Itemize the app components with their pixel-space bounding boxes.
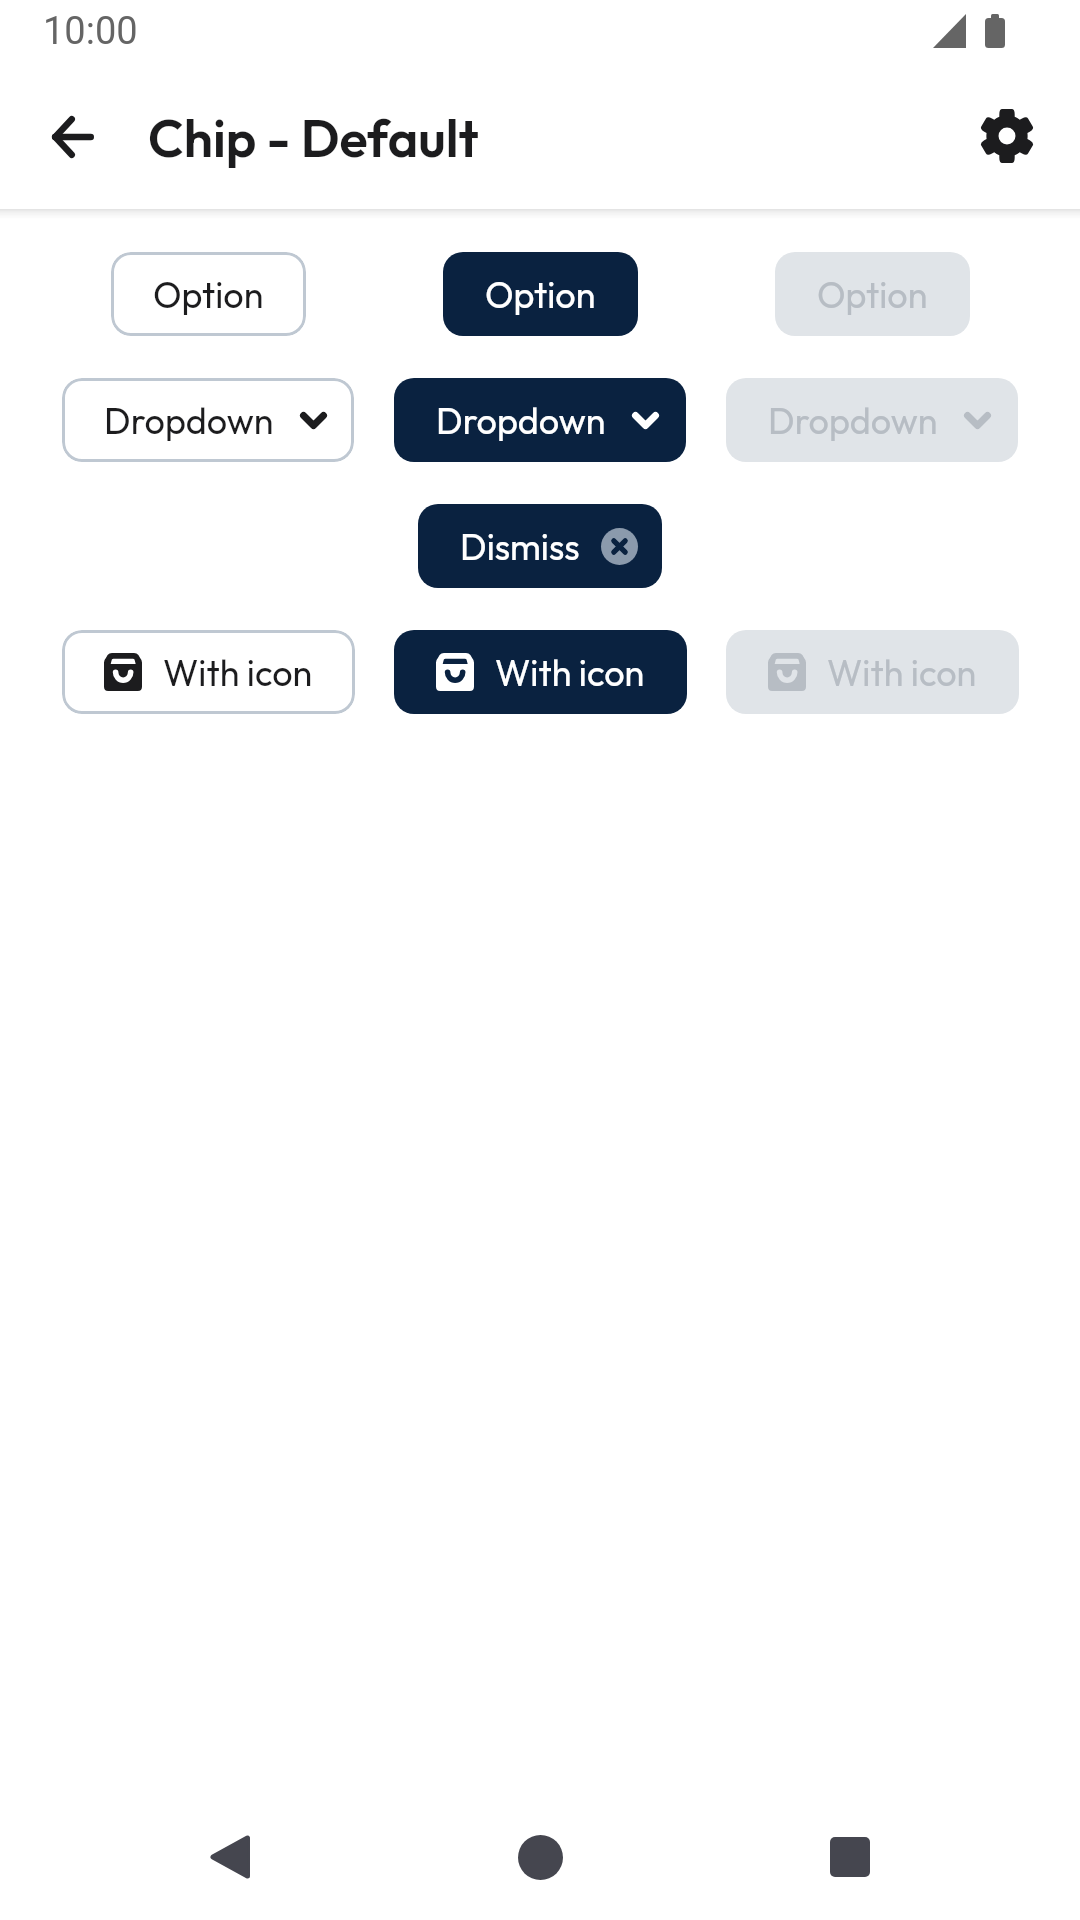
button[interactable]: With icon: [62, 630, 355, 714]
staticText: Dropdown: [104, 398, 274, 443]
staticText: Dismiss: [460, 524, 580, 569]
button[interactable]: Option: [443, 252, 638, 336]
button[interactable]: Dropdown: [394, 378, 686, 462]
staticText: Option: [485, 272, 596, 317]
staticText: Dropdown: [436, 398, 606, 443]
button[interactable]: Dismiss: [418, 504, 662, 588]
staticText: With icon: [827, 650, 977, 695]
staticText: 10:00: [43, 9, 138, 54]
button[interactable]: Recent apps: [802, 1809, 898, 1905]
button[interactable]: Navigate up: [37, 101, 109, 173]
staticText: Chip - Default: [148, 105, 479, 171]
button[interactable]: Settings: [971, 100, 1043, 172]
staticText: With icon: [495, 650, 645, 695]
button[interactable]: Home: [492, 1809, 588, 1905]
staticText: Dropdown: [768, 398, 938, 443]
staticText: Option: [817, 272, 928, 317]
staticText: With icon: [163, 650, 313, 695]
button[interactable]: Option: [111, 252, 306, 336]
staticText: Option: [153, 272, 264, 317]
button[interactable]: Back: [182, 1809, 278, 1905]
button[interactable]: Dropdown: [62, 378, 354, 462]
button[interactable]: With icon: [394, 630, 687, 714]
